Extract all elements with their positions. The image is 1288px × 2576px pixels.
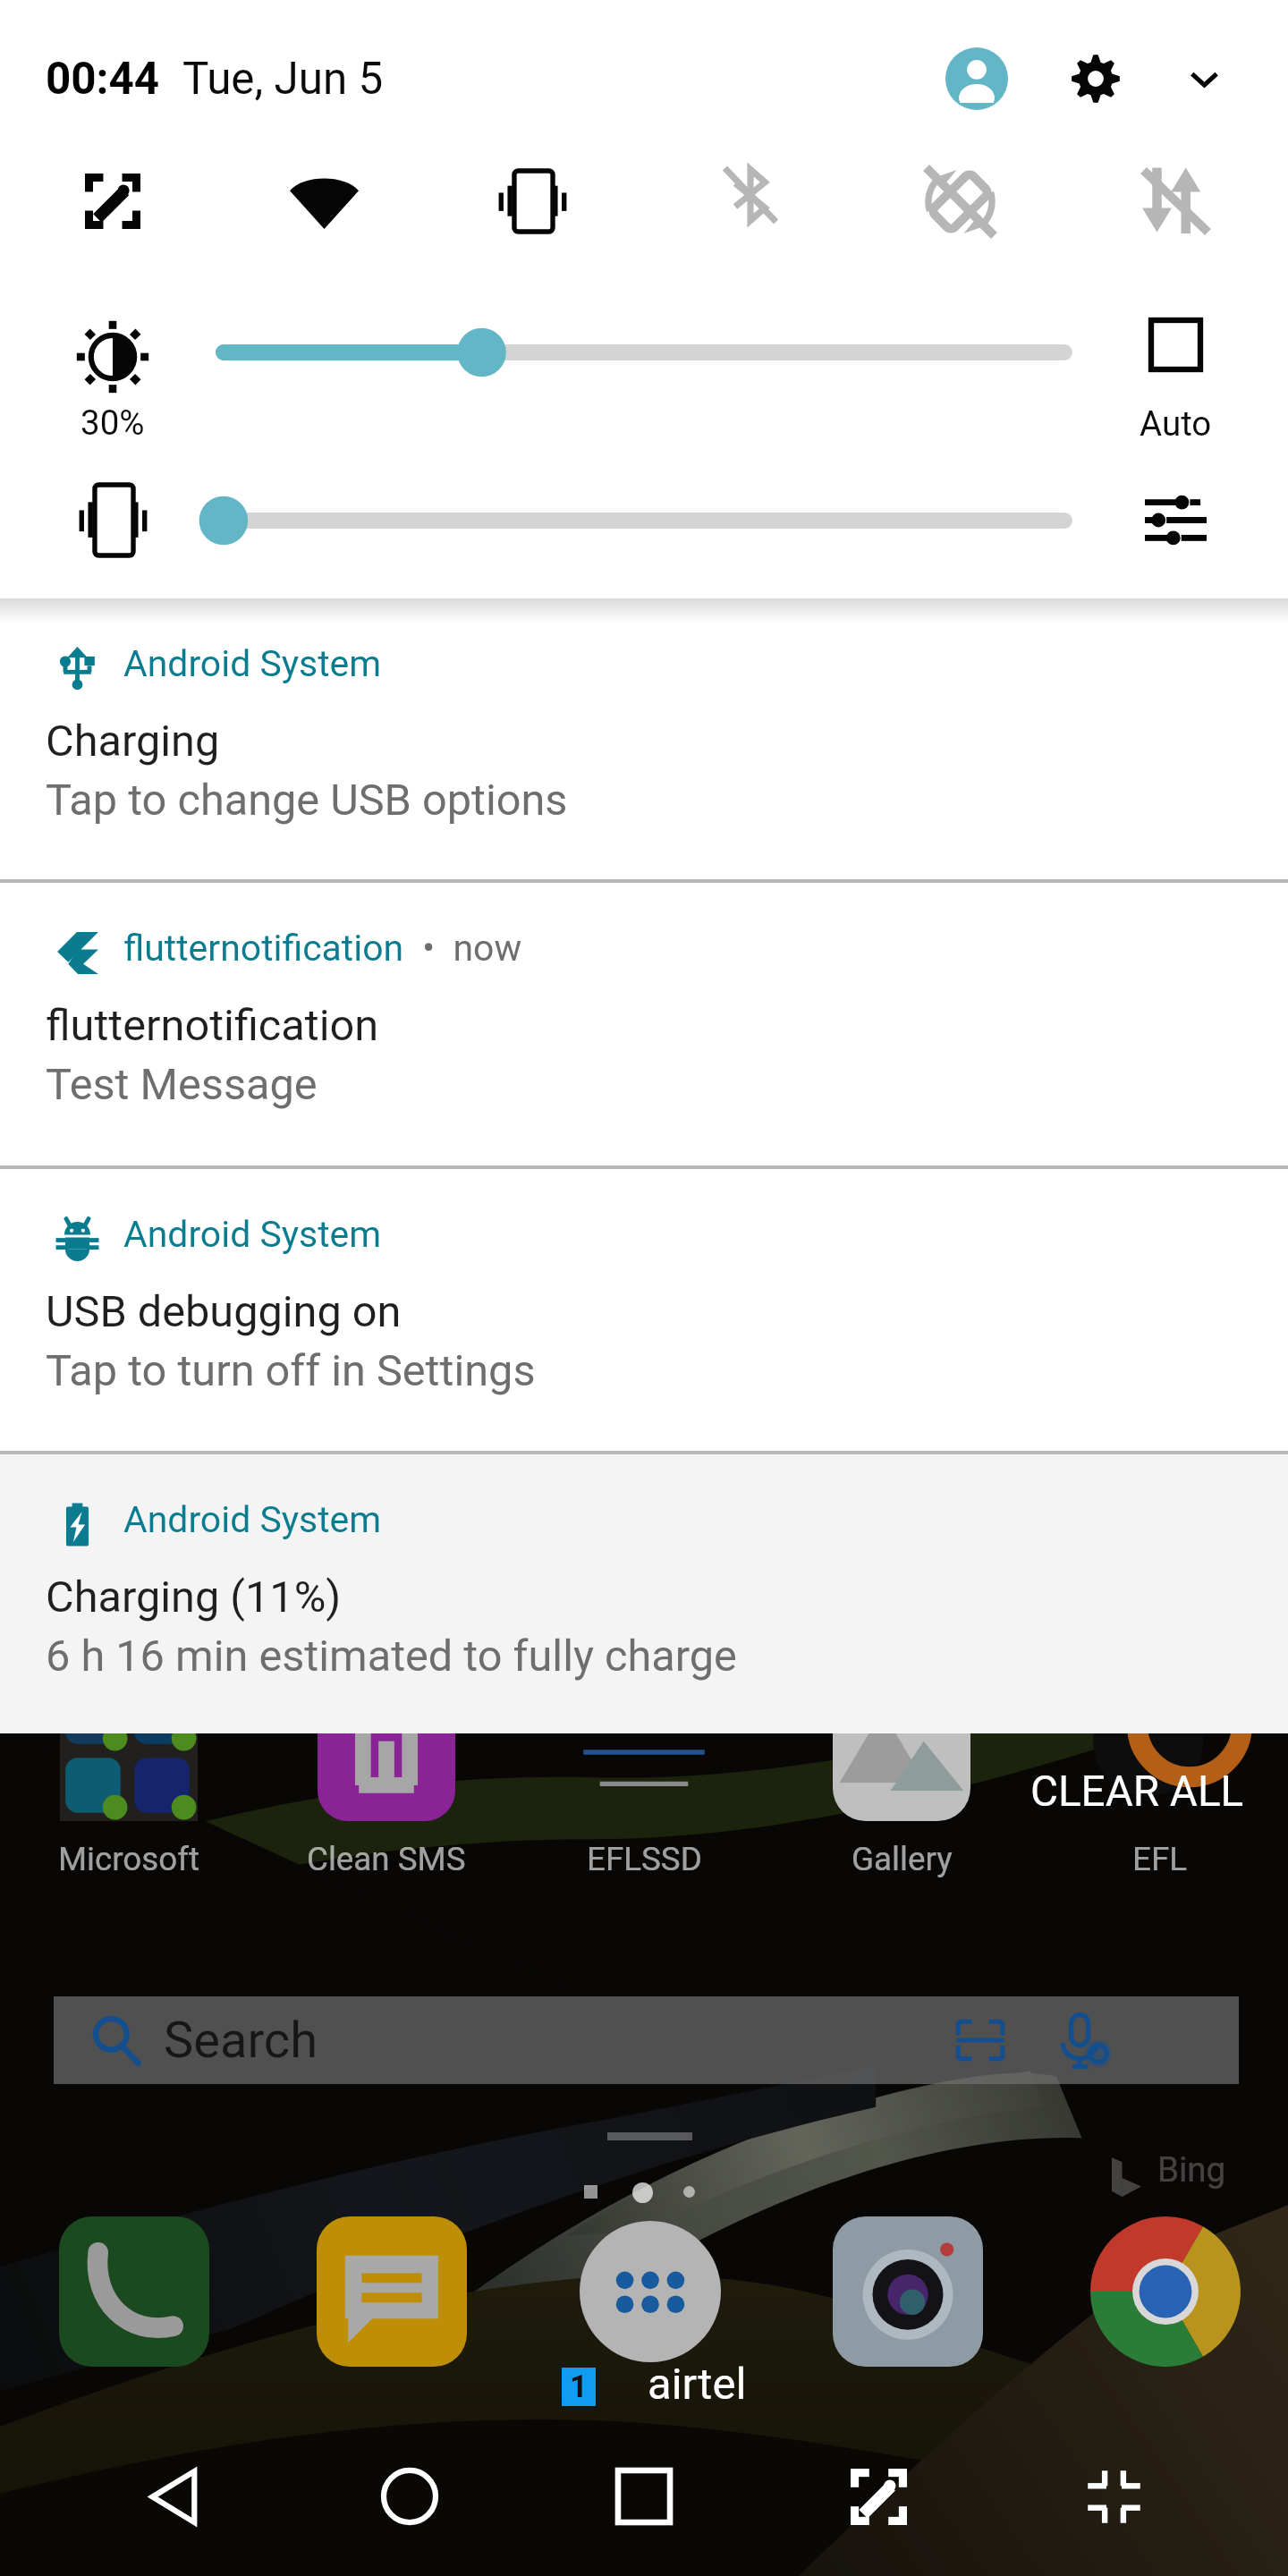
button[interactable]: Auto brightness [1100, 320, 1250, 470]
staticText: Search [164, 2011, 318, 2070]
staticText: flutternotification [46, 1000, 379, 1051]
button[interactable]: Recent apps [575, 2428, 713, 2565]
button[interactable]: Brightness level [38, 320, 188, 470]
staticText: • now [404, 927, 522, 970]
button[interactable]: Settings [1033, 16, 1158, 141]
staticText: Charging [46, 716, 220, 767]
button[interactable]: Phone [34, 2191, 234, 2392]
other: Voice search [1055, 2012, 1112, 2069]
button[interactable]: Mobile data off [1113, 139, 1238, 264]
staticText: Android System [123, 642, 382, 685]
button[interactable]: Screenshot [809, 2428, 947, 2565]
button[interactable]: Home [341, 2428, 479, 2565]
staticText: 1 [570, 2368, 589, 2405]
staticText: Tap to turn off in Settings [46, 1345, 536, 1396]
staticText: 6 h 16 min estimated to fully charge [46, 1631, 737, 1682]
button[interactable]: flutternotification [0, 883, 1288, 1165]
staticText: Android System [123, 1498, 382, 1541]
staticText: EFLSSD [587, 1840, 702, 1878]
button[interactable]: Ringer mode [50, 457, 175, 582]
button[interactable]: Wi-Fi [261, 139, 386, 264]
button[interactable]: All apps [550, 2191, 750, 2392]
button[interactable]: Screenshot [50, 139, 175, 264]
staticText: 00:44 [46, 53, 160, 105]
button[interactable]: Chrome [1065, 2191, 1266, 2392]
staticText: flutternotification [123, 927, 404, 970]
button[interactable]: Back [106, 2428, 244, 2565]
staticText: Gallery [852, 1840, 953, 1878]
staticText: Microsoft [58, 1840, 200, 1878]
other: Google Lens [955, 2015, 1005, 2065]
button[interactable]: Brightness [175, 302, 1114, 402]
button[interactable]: Android System [0, 1169, 1288, 1451]
button[interactable]: Volume [175, 470, 1114, 571]
staticText: Android System [123, 1213, 382, 1256]
staticText: CLEAR ALL [1030, 1767, 1244, 1817]
button[interactable]: Messages [292, 2191, 492, 2392]
staticText: Tue, Jun 5 [182, 53, 384, 105]
button[interactable]: Vibrate [470, 139, 595, 264]
button[interactable]: Expand quick settings [1141, 16, 1267, 141]
button[interactable]: Gallery [773, 1644, 1030, 1888]
staticText: Tap to change USB options [46, 775, 568, 826]
staticText: Charging (11%) [46, 1572, 342, 1623]
staticText: Bing [1157, 2149, 1226, 2190]
staticText: Test Message [46, 1059, 318, 1110]
staticText: airtel [648, 2359, 747, 2410]
staticText: 30% [80, 402, 145, 443]
button[interactable]: CLEAR ALL [1024, 1744, 1250, 1838]
button[interactable]: Shrink screen [1045, 2428, 1182, 2565]
button[interactable]: Auto rotate off [897, 139, 1022, 264]
button[interactable]: EFLSSD [515, 1644, 773, 1888]
button[interactable]: EFL [1030, 1644, 1288, 1888]
staticText: Auto [1140, 403, 1212, 444]
button[interactable]: Bluetooth off [688, 139, 813, 264]
button[interactable]: User account [914, 16, 1039, 141]
button[interactable]: Sound settings [1113, 457, 1238, 582]
button[interactable]: Android System [0, 598, 1288, 879]
button[interactable]: Android System [0, 1454, 1288, 1733]
button[interactable]: Clean SMS [258, 1644, 515, 1888]
staticText: Clean SMS [307, 1840, 466, 1878]
staticText: EFL [1132, 1840, 1187, 1878]
staticText: USB debugging on [46, 1286, 402, 1337]
button[interactable]: Search [54, 1996, 1239, 2084]
button[interactable]: Microsoft [0, 1644, 258, 1888]
button[interactable]: Camera [808, 2191, 1008, 2392]
